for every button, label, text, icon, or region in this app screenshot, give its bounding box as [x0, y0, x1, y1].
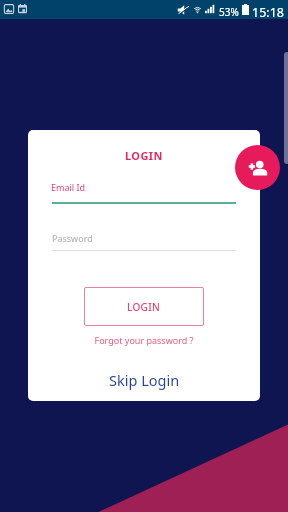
staticText: Password	[52, 232, 93, 244]
staticText: Forgot your password ?	[94, 334, 194, 346]
staticText: LOGIN	[127, 300, 161, 314]
staticText: 15:18	[252, 4, 284, 21]
staticText: Email Id	[51, 181, 86, 193]
button[interactable]: Forgot your password ?	[90, 331, 198, 348]
button[interactable]: Password	[52, 228, 236, 252]
button[interactable]: Email Id	[52, 178, 236, 204]
button[interactable]: Add user	[235, 145, 280, 190]
staticText: LOGIN	[125, 148, 163, 163]
staticText: 53%	[219, 5, 239, 19]
button[interactable]: Skip Login	[100, 368, 188, 392]
staticText: Skip Login	[109, 370, 180, 390]
button[interactable]: LOGIN	[84, 287, 204, 326]
